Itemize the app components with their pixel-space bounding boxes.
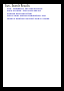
staticText: Sunrise and sunset tim — [7, 13, 63, 16]
staticText: NASA Solar System Exploration: Sun — [7, 15, 63, 18]
button[interactable]: Sunrise and sunset tim — [7, 12, 63, 15]
button[interactable]: Sun - Wikipedia, the free encyclo — [7, 7, 63, 10]
staticText: Sun - Search Results — [5, 4, 30, 7]
staticText: Today's weather forecast and UV index — [7, 18, 63, 21]
staticText: Solar System - Sun facts and da — [7, 10, 63, 13]
staticText: Sun - Wikipedia, the free encyclo — [7, 8, 63, 11]
button[interactable]: Today's weather forecast and UV index — [7, 17, 63, 20]
button[interactable]: NASA Solar System Exploration: Sun — [7, 14, 63, 17]
button[interactable]: Solar System - Sun facts and da — [7, 9, 63, 12]
